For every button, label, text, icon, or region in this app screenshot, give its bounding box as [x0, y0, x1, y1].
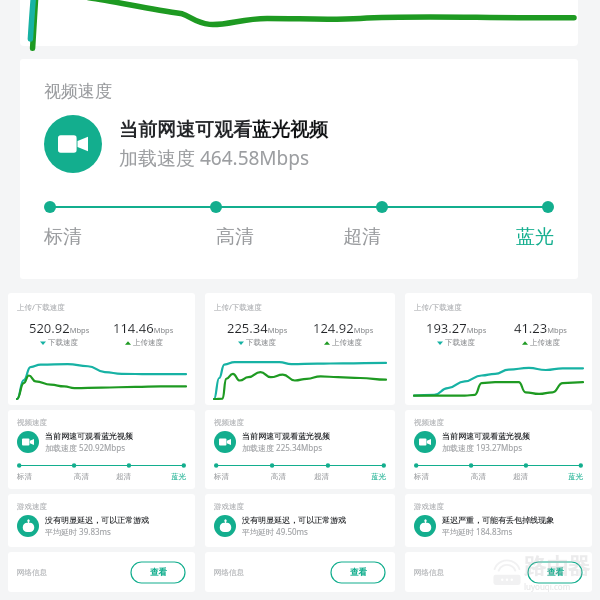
staticText: 蓝光	[371, 472, 386, 481]
staticText: 网络信息	[214, 568, 330, 577]
staticText: 当前网速可观看蓝光视频	[442, 431, 530, 441]
staticText: 高清	[271, 472, 286, 481]
staticText: 查看	[350, 567, 367, 578]
staticText: 高清	[216, 225, 254, 249]
staticText: 上传速度	[332, 338, 362, 347]
staticText: 超清	[343, 225, 381, 249]
staticText: 网络信息	[17, 568, 130, 577]
staticText: 124.92Mbps	[313, 319, 374, 337]
staticText: 标清	[17, 472, 32, 481]
staticText: 路由器	[524, 553, 590, 581]
staticText: 平均延时 39.83ms	[45, 526, 111, 537]
staticText: 超清	[513, 472, 528, 481]
staticText: 当前网速可观看蓝光视频	[119, 118, 328, 142]
staticText: 下载速度	[445, 338, 475, 347]
staticText: 上传速度	[530, 338, 560, 347]
staticText: 没有明显延迟，可以正常游戏	[45, 515, 149, 525]
staticText: 视频速度	[44, 81, 112, 102]
staticText: 视频速度	[17, 418, 47, 427]
staticText: 游戏速度	[17, 502, 47, 511]
staticText: 上传/下载速度	[414, 302, 462, 312]
staticText: 标清	[214, 472, 229, 481]
staticText: 加载速度 193.27Mbps	[442, 442, 523, 453]
staticText: 高清	[471, 472, 486, 481]
staticText: 蓝光	[171, 472, 186, 481]
staticText: 上传/下载速度	[214, 302, 262, 312]
staticText: 蓝光	[568, 472, 583, 481]
staticText: 超清	[314, 472, 329, 481]
staticText: 225.34Mbps	[227, 319, 288, 337]
staticText: 游戏速度	[214, 502, 244, 511]
staticText: 标清	[44, 225, 82, 249]
staticText: 平均延时 49.50ms	[242, 526, 308, 537]
staticText: 下载速度	[48, 338, 78, 347]
staticText: 平均延时 184.83ms	[442, 526, 513, 537]
button[interactable]: 视频速度	[20, 59, 578, 279]
staticText: 游戏速度	[414, 502, 444, 511]
staticText: 41.23Mbps	[514, 319, 567, 337]
staticText: 没有明显延迟，可以正常游戏	[242, 515, 346, 525]
staticText: 下载速度	[246, 338, 276, 347]
staticText: 蓝光	[516, 225, 554, 249]
staticText: 视频速度	[414, 418, 444, 427]
staticText: 当前网速可观看蓝光视频	[242, 431, 330, 441]
staticText: 上传/下载速度	[17, 302, 65, 312]
staticText: 延迟严重，可能有丢包掉线现象	[442, 515, 554, 525]
staticText: 上传速度	[133, 338, 163, 347]
staticText: 114.46Mbps	[113, 319, 174, 337]
staticText: 高清	[74, 472, 89, 481]
button[interactable]: 查看	[527, 561, 583, 584]
staticText: 加载速度 520.92Mbps	[45, 442, 126, 453]
button[interactable]: 查看	[330, 561, 386, 584]
staticText: 视频速度	[214, 418, 244, 427]
staticText: 193.27Mbps	[426, 319, 487, 337]
staticText: 当前网速可观看蓝光视频	[45, 431, 133, 441]
staticText: 查看	[150, 567, 167, 578]
staticText: 超清	[116, 472, 131, 481]
staticText: 查看	[547, 567, 564, 578]
staticText: luyouqi.com	[524, 581, 571, 592]
staticText: 标清	[414, 472, 429, 481]
staticText: 加载速度 464.58Mbps	[119, 145, 310, 171]
button[interactable]: 查看	[130, 561, 186, 584]
staticText: 520.92Mbps	[29, 319, 90, 337]
staticText: 网络信息	[414, 568, 527, 577]
staticText: 加载速度 225.34Mbps	[242, 442, 323, 453]
